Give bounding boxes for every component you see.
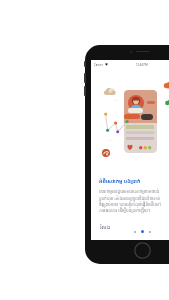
staticText: Carrier bbox=[94, 63, 103, 67]
staticText: 12:54 PM bbox=[136, 63, 148, 67]
button[interactable]: រំលង bbox=[99, 222, 112, 231]
staticText: សេវាកម្មនេះជួយអោយលោកអ្នកអាចបង់ប្រាក់បាន … bbox=[99, 189, 163, 213]
staticText: រំលង bbox=[100, 223, 111, 230]
other: Home bbox=[134, 242, 151, 259]
staticText: អំពីសេវាកម្ម បង់ប្រាក់ bbox=[99, 178, 141, 185]
